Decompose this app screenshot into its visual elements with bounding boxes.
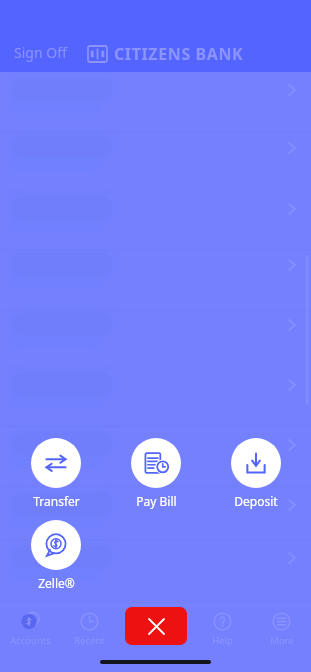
button[interactable]: Help bbox=[193, 609, 252, 647]
staticText: Transfer bbox=[33, 493, 80, 509]
button[interactable]: Sign Off bbox=[8, 39, 73, 66]
staticText: Recent bbox=[74, 634, 105, 647]
staticText: Deposit bbox=[234, 493, 278, 509]
staticText: More bbox=[270, 634, 294, 647]
button[interactable]: Deposit bbox=[220, 438, 292, 509]
staticText: Accounts bbox=[10, 634, 51, 647]
staticText: Zelle® bbox=[38, 575, 75, 591]
button[interactable]: Accounts bbox=[0, 609, 60, 647]
button[interactable]: Zelle bbox=[20, 520, 92, 591]
button[interactable]: Pay Bill bbox=[120, 438, 192, 509]
staticText: Help bbox=[212, 634, 233, 647]
staticText: Pay Bill bbox=[136, 493, 177, 509]
button[interactable]: Recent bbox=[60, 609, 119, 647]
button[interactable]: Transfer bbox=[20, 438, 92, 509]
staticText: CITIZENS BANK bbox=[114, 43, 244, 65]
button[interactable]: Close bbox=[125, 607, 187, 645]
staticText: Sign Off bbox=[14, 43, 67, 62]
button[interactable]: More bbox=[252, 609, 311, 647]
